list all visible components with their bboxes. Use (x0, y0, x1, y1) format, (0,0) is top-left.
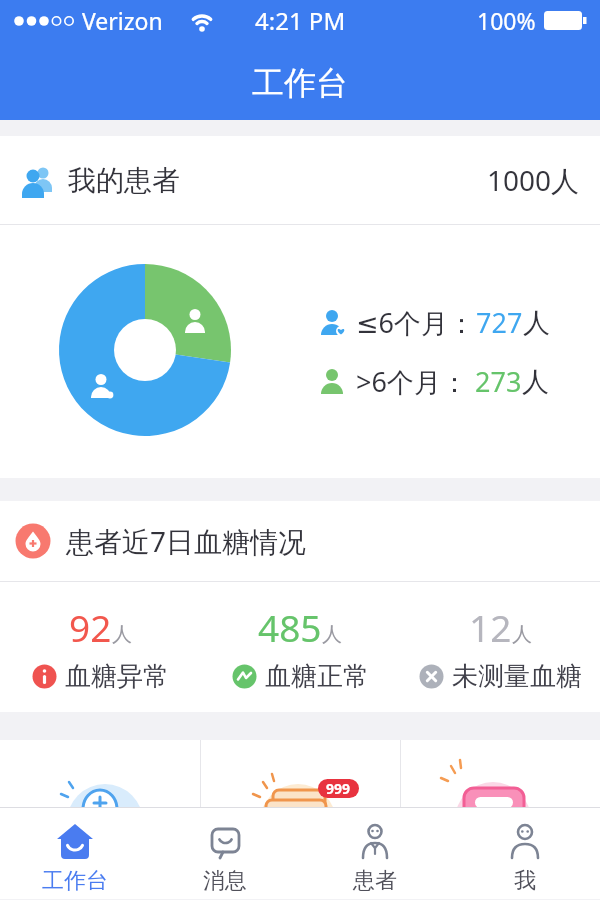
button[interactable]: 92 (0, 582, 200, 712)
staticText: 人 (523, 306, 550, 340)
staticText: 未测量血糖 (452, 660, 582, 693)
staticText: 人 (322, 622, 342, 647)
staticText: 人 (522, 365, 549, 399)
button[interactable]: 12 (400, 582, 600, 712)
staticText: 我的患者 (68, 163, 180, 198)
button[interactable]: 我 (450, 808, 600, 899)
button[interactable]: 患者 (300, 808, 450, 899)
button[interactable]: 工作台 (0, 808, 150, 899)
staticText: 12 (469, 602, 512, 652)
staticText: 工作台 (252, 63, 348, 103)
staticText: 血糖正常 (265, 660, 369, 693)
staticText: 92 (69, 602, 112, 652)
staticText: 1000人 (487, 161, 580, 199)
staticText: 消息 (203, 867, 247, 895)
staticText: 485 (258, 602, 322, 652)
staticText: 999 (326, 779, 351, 798)
staticText: 患者 (353, 867, 397, 895)
staticText: 100% (477, 5, 536, 36)
staticText: 人 (112, 622, 132, 647)
button[interactable]: ≤6个月： (318, 304, 550, 341)
staticText: 血糖异常 (65, 660, 169, 693)
staticText: 患者近7日血糖情况 (66, 522, 307, 560)
staticText: 273 (468, 363, 522, 400)
button[interactable]: 485 (200, 582, 400, 712)
button[interactable]: 消息 (150, 808, 300, 899)
staticText: ≤6个月： (356, 304, 476, 341)
button[interactable] (0, 740, 200, 807)
staticText: 4:21 PM (255, 4, 346, 37)
staticText: 工作台 (42, 867, 108, 895)
button[interactable]: 我的患者 (0, 136, 600, 224)
staticText: 人 (512, 622, 532, 647)
button[interactable]: >6个月： (318, 363, 549, 400)
button[interactable]: 999 (201, 740, 400, 807)
button[interactable] (401, 740, 600, 807)
staticText: 我 (514, 867, 536, 895)
staticText: >6个月： (356, 363, 468, 400)
staticText: Verizon (82, 5, 163, 36)
staticText: 727 (476, 304, 523, 341)
